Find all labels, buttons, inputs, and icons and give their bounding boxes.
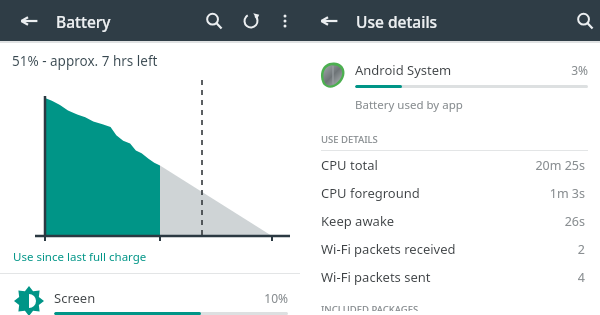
staticText: Wi-Fi packets received: [321, 240, 456, 258]
staticText: 2: [470, 241, 585, 258]
button[interactable]: Wi-Fi packets received: [300, 235, 600, 263]
staticText: INCLUDED PACKAGES: [321, 303, 419, 311]
staticText: CPU foreground: [321, 184, 420, 202]
staticText: USE DETAILS: [321, 133, 378, 146]
staticText: Keep awake: [321, 212, 395, 230]
button[interactable]: Use since last full charge: [0, 246, 300, 273]
button[interactable]: Screen: [0, 274, 300, 315]
button[interactable]: Wi-Fi packets sent: [300, 263, 600, 291]
staticText: 3%: [540, 62, 588, 78]
staticText: Battery used by app: [355, 97, 463, 113]
staticText: Screen: [54, 289, 96, 307]
button[interactable]: Android System: [300, 43, 600, 127]
staticText: 26s: [470, 213, 585, 230]
button[interactable]: More options: [264, 0, 305, 41]
staticText: Use since last full charge: [13, 249, 147, 265]
button[interactable]: CPU foreground: [300, 179, 600, 207]
staticText: Android System: [355, 61, 452, 79]
staticText: CPU total: [321, 156, 378, 174]
staticText: 51% - approx. 7 hrs left: [12, 52, 158, 70]
staticText: 4: [470, 269, 585, 286]
button[interactable]: CPU total: [300, 151, 600, 179]
staticText: Use details: [356, 11, 438, 32]
staticText: 20m 25s: [470, 157, 585, 174]
button[interactable]: Search: [193, 0, 234, 41]
button[interactable]: Keep awake: [300, 207, 600, 235]
button[interactable]: Refresh: [230, 0, 271, 41]
staticText: Battery: [56, 11, 111, 32]
button[interactable]: Back: [308, 0, 349, 41]
staticText: 1m 3s: [470, 185, 585, 202]
staticText: 10%: [246, 290, 288, 306]
button[interactable]: Back: [8, 0, 49, 41]
staticText: Wi-Fi packets sent: [321, 268, 431, 286]
button[interactable]: Search: [564, 0, 600, 41]
